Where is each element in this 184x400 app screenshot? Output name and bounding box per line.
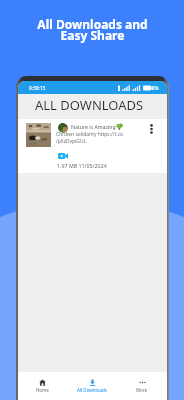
staticText: 1.97 MB 11/05/2024 [57, 162, 107, 169]
button[interactable]: More [117, 372, 167, 393]
button[interactable]: All Downloads [67, 372, 117, 393]
staticText: All Downloads [77, 387, 107, 393]
staticText: Home [36, 387, 49, 393]
button[interactable]: More options [144, 120, 158, 137]
staticText: All Downloads and Easy Share [37, 16, 148, 43]
staticText: Nature is Amazing [71, 123, 116, 130]
staticText: 9:30:13 [29, 85, 46, 92]
staticText: ALL DOWNLOADS [35, 96, 144, 114]
staticText: More [136, 387, 148, 393]
staticText: Chicken solidarity https://t.co /pXzDvpi… [56, 131, 124, 144]
button[interactable]: Home [18, 372, 67, 393]
staticText: 42% [149, 85, 159, 92]
button[interactable]: Nature is Amazing [18, 119, 167, 173]
